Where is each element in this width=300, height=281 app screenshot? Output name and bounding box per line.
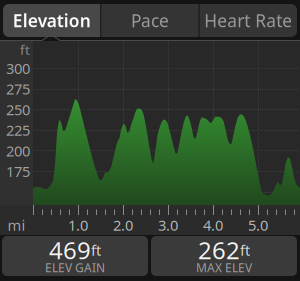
staticText: 3.0: [158, 215, 178, 235]
staticText: ft: [240, 240, 250, 260]
button[interactable]: Elevation: [3, 4, 100, 37]
button[interactable]: Heart Rate: [200, 4, 297, 37]
staticText: ft: [20, 41, 30, 58]
staticText: mi: [7, 215, 25, 235]
button[interactable]: 262: [151, 236, 297, 276]
button[interactable]: 469: [2, 236, 148, 276]
staticText: 469: [49, 234, 91, 266]
staticText: Heart Rate: [204, 9, 292, 32]
staticText: 4.0: [203, 215, 223, 235]
staticText: 275: [6, 79, 30, 99]
staticText: 250: [6, 100, 30, 119]
staticText: Elevation: [13, 9, 91, 32]
staticText: 225: [6, 120, 30, 140]
staticText: ft: [91, 240, 101, 260]
staticText: 5.0: [248, 215, 268, 235]
button[interactable]: Pace: [101, 4, 199, 37]
staticText: 1.0: [68, 215, 88, 235]
staticText: 300: [6, 59, 30, 78]
staticText: ELEV GAIN: [45, 259, 105, 275]
staticText: 175: [6, 162, 30, 181]
staticText: Pace: [131, 9, 169, 32]
staticText: 2.0: [113, 215, 133, 235]
staticText: 262: [198, 234, 240, 266]
staticText: MAX ELEV: [196, 259, 252, 275]
staticText: 200: [6, 141, 30, 160]
